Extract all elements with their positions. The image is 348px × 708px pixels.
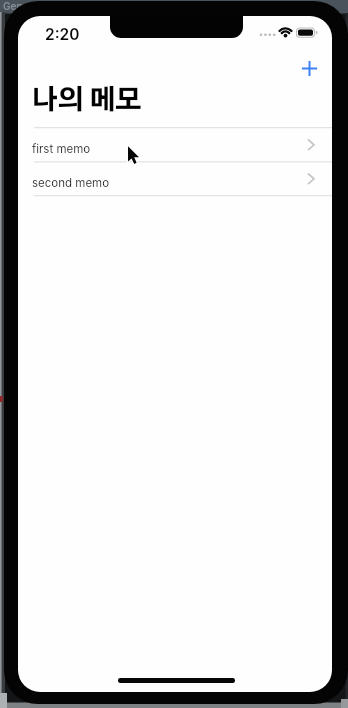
staticText: Gene xyxy=(3,0,29,12)
button[interactable]: first memo xyxy=(18,128,332,161)
staticText: first memo xyxy=(32,142,91,156)
staticText: 나의 메모 xyxy=(31,87,141,114)
button[interactable] xyxy=(295,54,324,83)
button[interactable]: second memo xyxy=(18,162,332,195)
staticText: second memo xyxy=(32,176,110,190)
staticText: 2:20 xyxy=(45,25,80,44)
